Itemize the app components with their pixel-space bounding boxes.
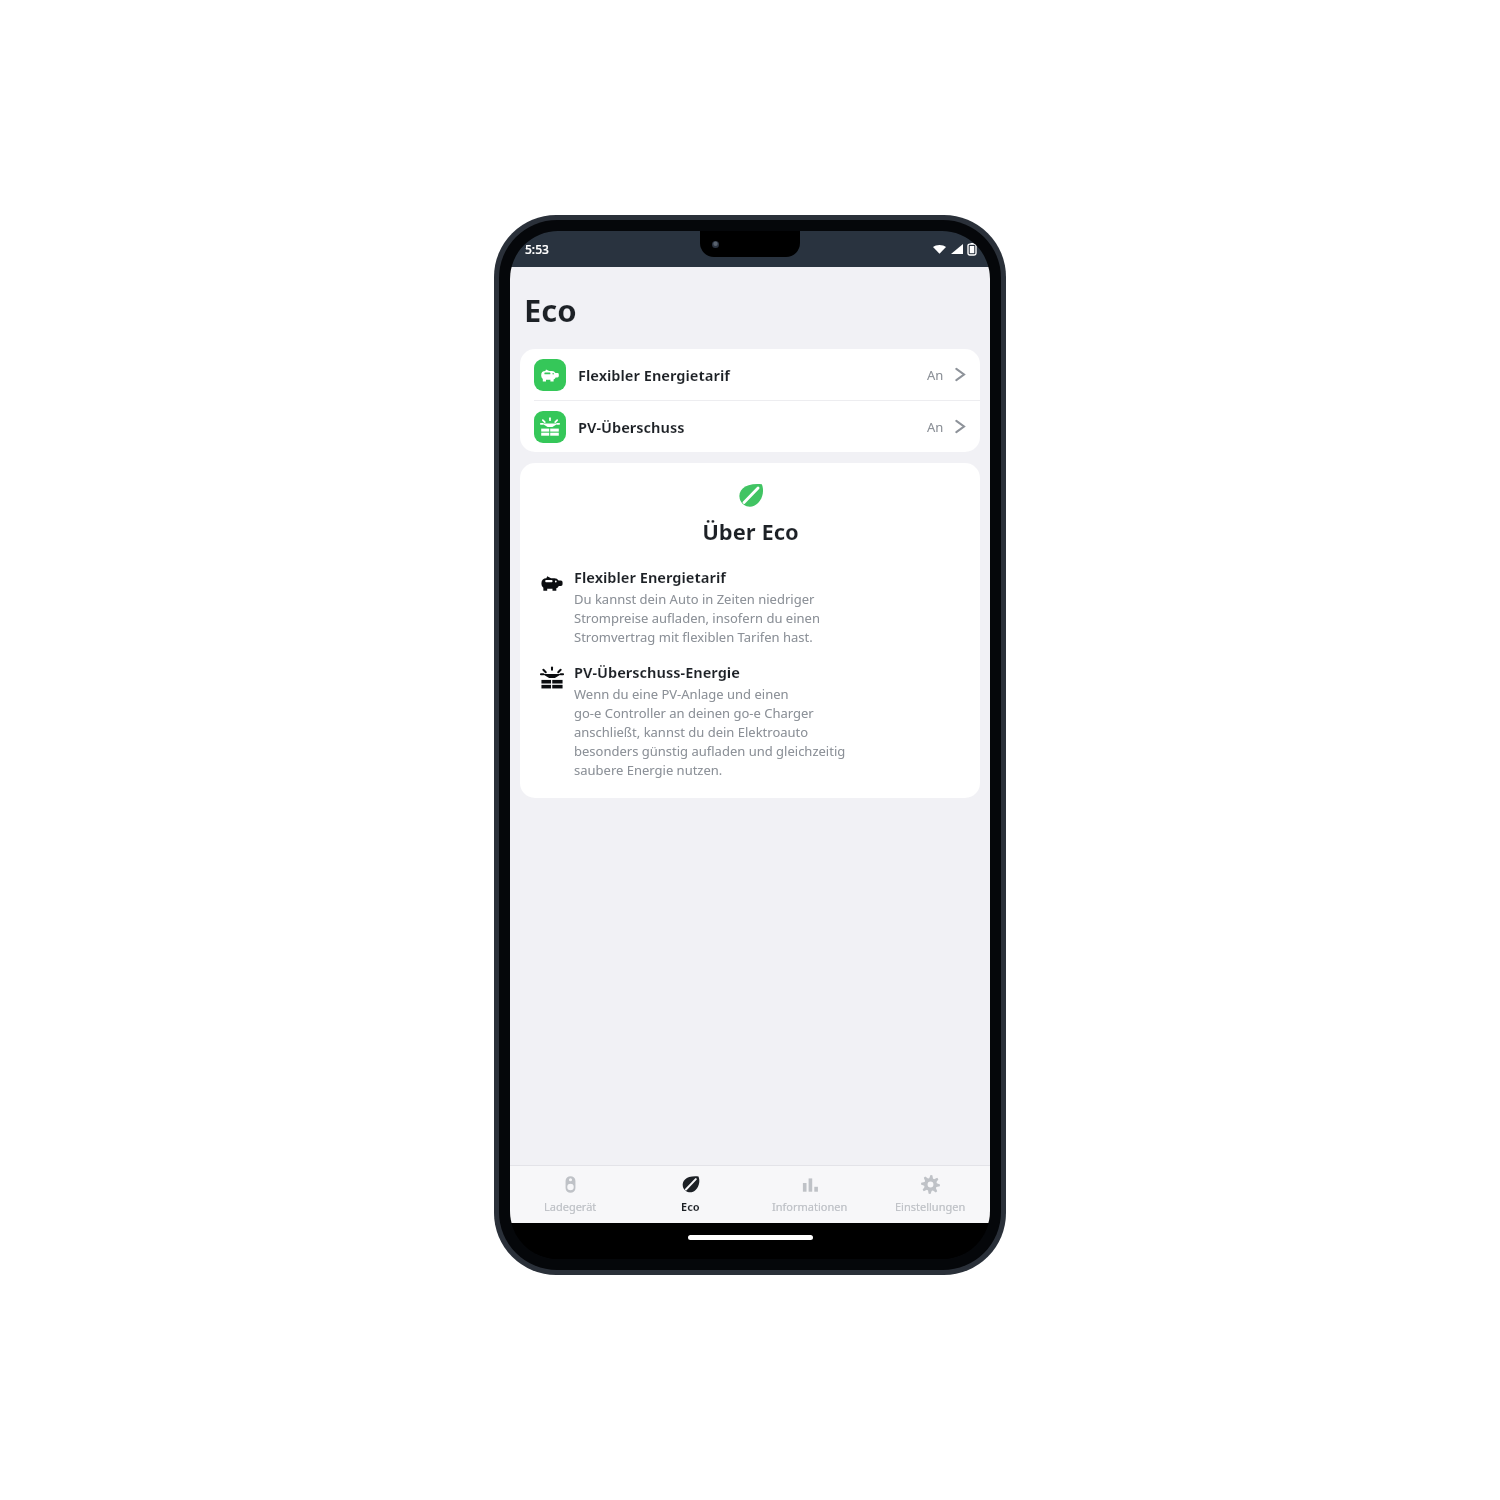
staticText: Du kannst dein Auto in Zeiten niedriger …: [574, 590, 820, 646]
button[interactable]: PV-Überschuss: [520, 401, 980, 452]
staticText: PV-Überschuss: [578, 417, 927, 437]
staticText: Flexibler Energietarif: [574, 567, 726, 587]
button[interactable]: Flexibler Energietarif: [520, 349, 980, 400]
staticText: Einstellungen: [895, 1199, 966, 1214]
button[interactable]: Eco: [630, 1165, 750, 1223]
staticText: PV-Überschuss-Energie: [574, 662, 740, 682]
staticText: 5:53: [525, 241, 549, 257]
staticText: Ladegerät: [544, 1199, 597, 1214]
button[interactable]: Einstellungen: [870, 1165, 990, 1223]
button[interactable]: Ladegerät: [510, 1165, 630, 1223]
staticText: Über Eco: [702, 516, 799, 546]
staticText: Flexibler Energietarif: [578, 365, 927, 385]
button[interactable]: Informationen: [750, 1165, 870, 1223]
staticText: Eco: [681, 1199, 700, 1214]
staticText: An: [927, 366, 944, 384]
staticText: Eco: [524, 289, 577, 331]
staticText: An: [927, 418, 944, 436]
staticText: Wenn du eine PV-Anlage und einen go-e Co…: [574, 685, 846, 779]
staticText: Informationen: [772, 1199, 848, 1214]
